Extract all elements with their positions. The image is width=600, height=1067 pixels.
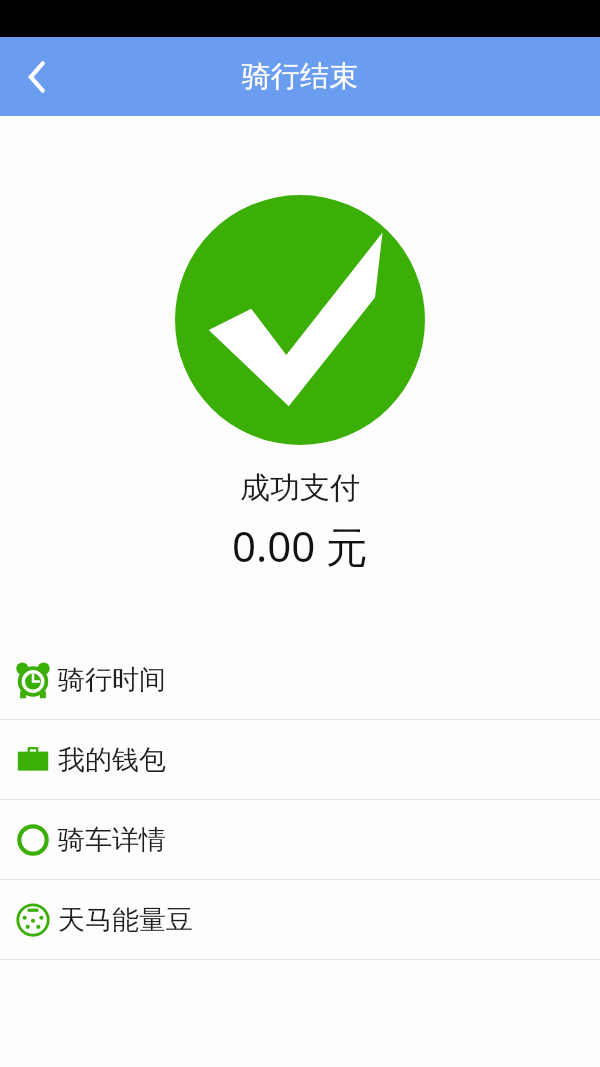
staticText: 骑行结束: [242, 58, 358, 95]
staticText: 0.00 元: [0, 517, 600, 574]
button[interactable]: 骑行时间: [0, 640, 600, 719]
button[interactable]: 天马能量豆: [0, 880, 600, 959]
staticText: 骑车详情: [58, 823, 166, 857]
staticText: 成功支付: [0, 469, 600, 507]
staticText: 我的钱包: [58, 743, 166, 777]
staticText: 骑行时间: [58, 663, 166, 697]
button[interactable]: 我的钱包: [0, 720, 600, 799]
button[interactable]: 骑车详情: [0, 800, 600, 879]
button[interactable]: Back: [0, 37, 74, 116]
staticText: 天马能量豆: [58, 903, 193, 937]
